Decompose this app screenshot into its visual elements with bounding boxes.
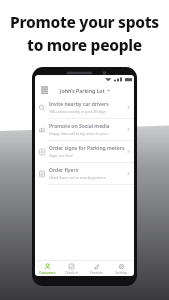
staticText: 100+ users nearby in past 30 days [49,109,107,114]
staticText: Customers [39,271,56,275]
staticText: John's Parking Lot [60,87,105,94]
button[interactable]: Order signs for Parking meters [35,141,134,162]
staticText: Invite nearby car drivers [49,101,109,108]
staticText: Check-in [65,271,79,275]
button[interactable]: Order flyers [35,163,134,184]
staticText: Promote your spots [10,11,159,32]
staticText: Order flyers [49,167,79,174]
button[interactable]: Invite nearby car drivers [35,97,134,118]
staticText: Signs are free! [49,153,74,158]
button[interactable]: Check-in [59,261,84,276]
staticText: Order signs for Parking meters [49,145,125,152]
staticText: Promote [90,271,104,275]
button[interactable]: Menu [38,84,50,96]
button[interactable]: Promote [84,261,109,276]
staticText: Promote on Social media [49,123,110,130]
staticText: to more people [27,34,142,55]
staticText: Happy links will bring users to your [49,131,109,136]
staticText: Hand them out to nearby parkers [49,175,106,180]
button[interactable]: John's Parking Lot [60,87,110,94]
button[interactable]: Settings [109,261,134,276]
staticText: Settings [115,271,128,275]
button[interactable]: Promote on Social media [35,119,134,140]
button[interactable]: Customers [35,261,59,276]
